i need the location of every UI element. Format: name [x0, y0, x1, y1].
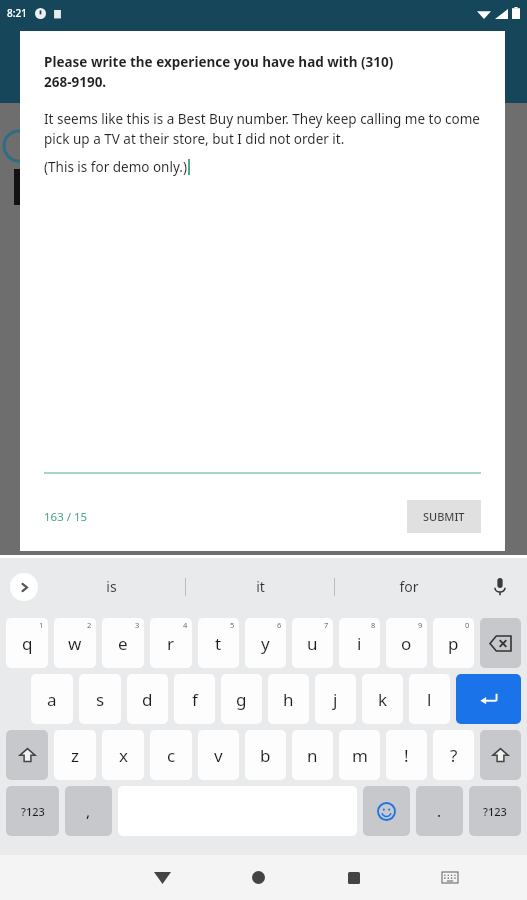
button[interactable]: 4	[150, 618, 192, 668]
button[interactable]: 2	[54, 618, 96, 668]
button[interactable]: f	[174, 674, 215, 724]
button[interactable]: 9	[386, 618, 427, 668]
button[interactable]: Shift	[480, 730, 521, 780]
staticText: 2	[87, 620, 92, 630]
button[interactable]: Home	[210, 855, 306, 900]
staticText: ?123	[21, 804, 45, 819]
staticText: i	[357, 632, 362, 655]
button[interactable]: v	[198, 730, 239, 780]
button[interactable]: More suggestions	[10, 573, 38, 601]
staticText: 8	[371, 620, 376, 630]
button[interactable]: 1	[6, 618, 48, 668]
button[interactable]: n	[292, 730, 333, 780]
button[interactable]: s	[79, 674, 121, 724]
staticText: it	[256, 577, 265, 596]
button[interactable]: c	[150, 730, 192, 780]
button[interactable]: a	[31, 674, 73, 724]
staticText: ,	[86, 801, 91, 821]
staticText: w	[68, 632, 82, 655]
button[interactable]: SUBMIT	[407, 500, 481, 533]
button[interactable]: .	[416, 786, 463, 836]
staticText: 0	[465, 620, 470, 630]
staticText: s	[96, 688, 105, 711]
button[interactable]: z	[54, 730, 96, 780]
staticText: n	[307, 744, 318, 767]
staticText: q	[22, 632, 33, 655]
staticText: j	[333, 688, 338, 711]
button[interactable]: Enter	[456, 674, 521, 724]
staticText: h	[283, 688, 294, 711]
button[interactable]: it	[186, 558, 334, 615]
staticText: f	[192, 688, 198, 711]
button[interactable]: k	[362, 674, 403, 724]
button[interactable]: x	[102, 730, 144, 780]
staticText: 3	[135, 620, 140, 630]
button[interactable]: ?	[433, 730, 474, 780]
button[interactable]: Backspace	[480, 618, 521, 668]
button[interactable]: d	[127, 674, 168, 724]
button[interactable]: h	[268, 674, 309, 724]
staticText: v	[214, 744, 223, 767]
staticText: a	[47, 688, 57, 711]
staticText: r	[167, 632, 175, 655]
staticText: z	[71, 744, 79, 767]
button[interactable]: is	[38, 558, 185, 615]
staticText: 4	[183, 620, 188, 630]
staticText: l	[427, 688, 432, 711]
staticText: x	[119, 744, 128, 767]
staticText: y	[261, 632, 270, 655]
staticText: It seems like this is a Best Buy number.…	[44, 110, 481, 148]
staticText: 6	[277, 620, 282, 630]
button[interactable]: Switch keyboard	[402, 855, 498, 900]
staticText: (This is for demo only.)	[44, 158, 187, 176]
staticText: p	[448, 632, 459, 655]
staticText: ?123	[483, 804, 507, 819]
staticText: u	[307, 632, 318, 655]
button[interactable]: 0	[433, 618, 474, 668]
staticText: Please write the experience you have had…	[44, 53, 394, 91]
staticText: is	[106, 577, 117, 596]
button[interactable]: 3	[102, 618, 144, 668]
button[interactable]: l	[409, 674, 450, 724]
button[interactable]: ?123	[469, 786, 521, 836]
staticText: 5	[230, 620, 235, 630]
button[interactable]: 5	[198, 618, 239, 668]
staticText: 9	[418, 620, 423, 630]
staticText: d	[142, 688, 153, 711]
staticText: 8:21	[7, 6, 27, 20]
staticText: 163 / 15	[44, 509, 88, 525]
staticText: 1	[39, 620, 44, 630]
staticText: for	[399, 577, 419, 596]
staticText: k	[378, 688, 388, 711]
button[interactable]: Recent apps	[306, 855, 402, 900]
button[interactable]: Emoji	[363, 786, 410, 836]
staticText: c	[167, 744, 176, 767]
button[interactable]: 8	[339, 618, 380, 668]
button[interactable]: Back	[114, 855, 210, 900]
staticText: .	[437, 801, 442, 821]
staticText: ?	[450, 744, 458, 767]
button[interactable]: j	[315, 674, 356, 724]
staticText: !	[404, 744, 409, 767]
staticText: o	[401, 632, 412, 655]
button[interactable]: b	[245, 730, 286, 780]
staticText: b	[260, 744, 271, 767]
button[interactable]: Shift	[6, 730, 48, 780]
staticText: m	[352, 744, 368, 767]
button[interactable]: g	[221, 674, 262, 724]
button[interactable]: 6	[245, 618, 286, 668]
staticText: 7	[324, 620, 329, 630]
button[interactable]: for	[335, 558, 483, 615]
staticText: SUBMIT	[423, 509, 465, 524]
button[interactable]: Voice input	[483, 558, 517, 615]
button[interactable]: m	[339, 730, 380, 780]
button[interactable]: !	[386, 730, 427, 780]
staticText: e	[118, 632, 128, 655]
button[interactable]: ,	[65, 786, 112, 836]
button[interactable]: 7	[292, 618, 333, 668]
button[interactable]: ?123	[6, 786, 59, 836]
staticText: t	[215, 632, 222, 655]
staticText: g	[236, 688, 247, 711]
